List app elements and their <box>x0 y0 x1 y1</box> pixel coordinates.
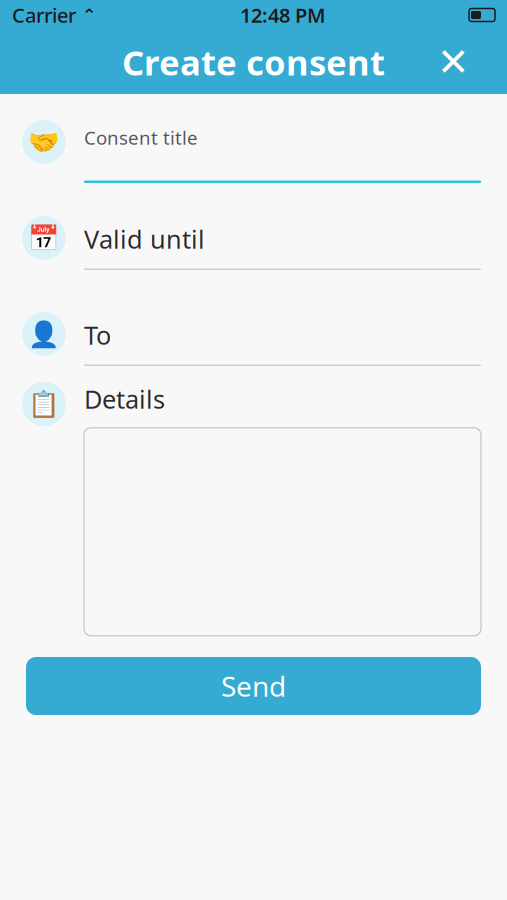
staticText: 👤 <box>28 319 60 348</box>
staticText: Valid until <box>84 222 205 256</box>
staticText: 📋 <box>28 389 60 418</box>
staticText: Create consent <box>122 39 385 85</box>
staticText: Carrier <box>12 2 76 28</box>
staticText: 📅 <box>28 223 60 252</box>
staticText: To <box>84 318 111 352</box>
staticText: 🤝 <box>28 127 60 156</box>
button[interactable]: Close <box>426 35 480 89</box>
button[interactable]: Send <box>26 657 481 715</box>
staticText: ⌃ <box>76 5 97 25</box>
staticText: 12:48 PM <box>240 2 326 28</box>
staticText: Consent title <box>84 125 198 150</box>
staticText: Send <box>221 667 286 705</box>
staticText: ✕ <box>437 40 469 84</box>
staticText: Details <box>84 382 165 416</box>
